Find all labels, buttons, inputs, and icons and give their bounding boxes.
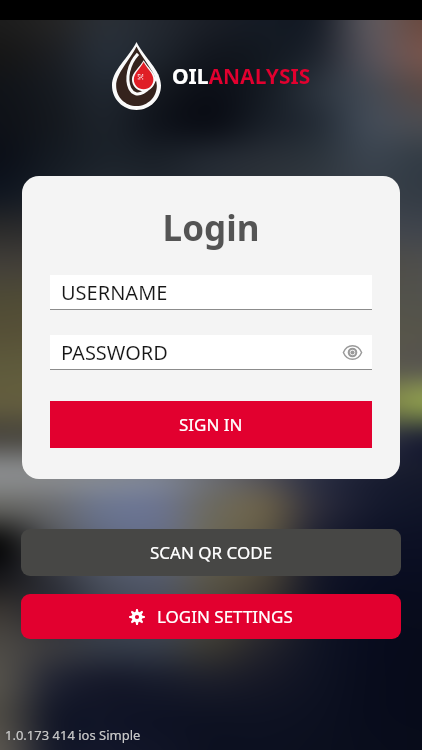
staticText: Login xyxy=(50,204,372,252)
staticText: PASSWORD xyxy=(61,339,168,366)
staticText: SCAN QR CODE xyxy=(150,541,273,564)
staticText: LOGIN SETTINGS xyxy=(157,605,293,628)
staticText: SIGN IN xyxy=(179,413,243,436)
button[interactable]: LOGIN SETTINGS xyxy=(21,594,401,639)
button[interactable]: Show password xyxy=(340,340,364,364)
staticText: 1.0.173 414 ios Simple xyxy=(5,726,141,744)
button[interactable]: SIGN IN xyxy=(50,401,372,448)
staticText: OILANALYSIS xyxy=(172,62,311,91)
staticText: USERNAME xyxy=(61,279,168,306)
button[interactable]: SCAN QR CODE xyxy=(21,529,401,576)
